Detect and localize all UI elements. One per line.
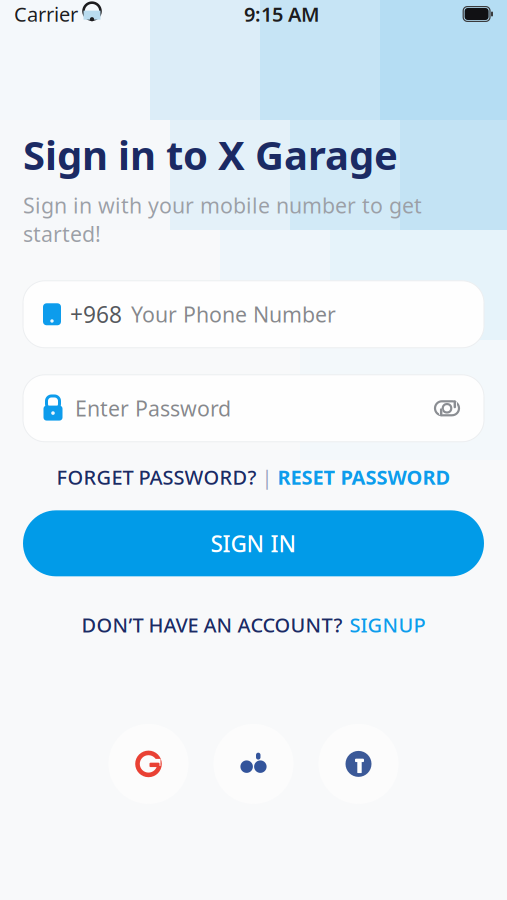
button[interactable]: RESET PASSWORD bbox=[277, 464, 450, 490]
staticText: SIGN IN bbox=[210, 528, 296, 558]
button[interactable]: Sign in with Google bbox=[108, 724, 188, 804]
button[interactable]: Sign in with Facebook bbox=[318, 724, 398, 804]
staticText: Enter Password bbox=[75, 394, 231, 422]
button[interactable]: SIGN IN bbox=[23, 510, 484, 576]
button[interactable]: FORGET PASSWORD? bbox=[56, 464, 256, 490]
staticText: Your Phone Number bbox=[131, 300, 336, 328]
staticText: RESET PASSWORD bbox=[277, 464, 450, 490]
button[interactable]: Sign in with Apple bbox=[213, 724, 293, 804]
staticText: SIGNUP bbox=[349, 611, 425, 638]
staticText: Carrier bbox=[14, 1, 78, 27]
staticText: FORGET PASSWORD? bbox=[56, 464, 256, 490]
staticText: Sign in to X Garage bbox=[23, 128, 398, 181]
staticText: 9:15 AM bbox=[244, 1, 320, 27]
staticText: DON’T HAVE AN ACCOUNT? bbox=[81, 611, 342, 638]
button[interactable]: Show password bbox=[430, 391, 464, 425]
staticText: Sign in with your mobile number to get s… bbox=[23, 191, 422, 248]
staticText: +968 bbox=[70, 299, 122, 329]
staticText: | bbox=[256, 464, 277, 490]
button[interactable]: SIGNUP bbox=[349, 611, 425, 638]
